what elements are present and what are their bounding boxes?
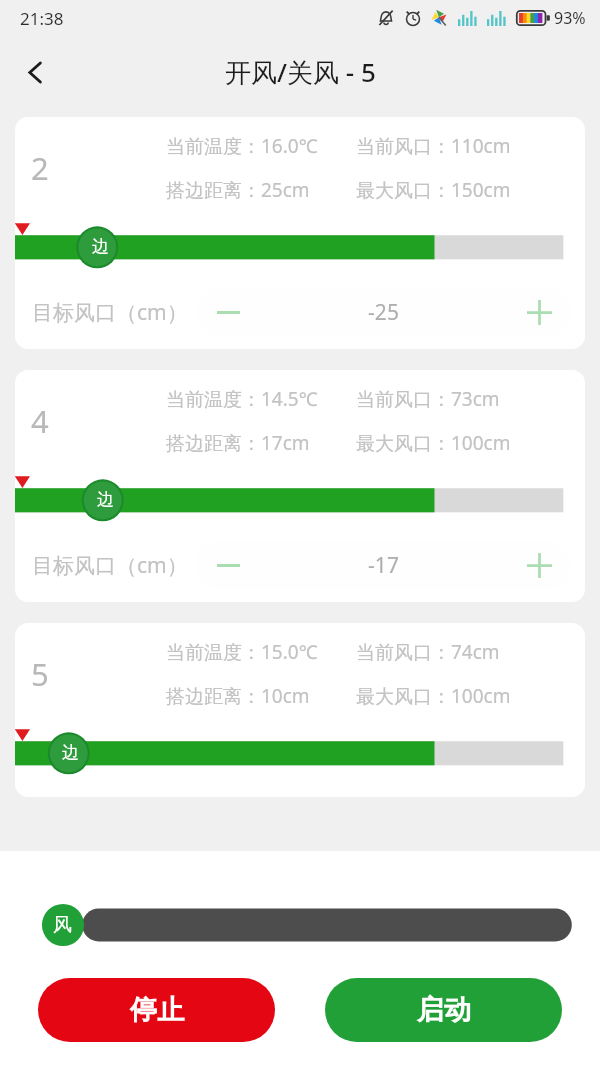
staticText: 5 <box>31 653 166 695</box>
staticText: -25 <box>260 298 507 327</box>
staticText: 搭边距离：25cm <box>166 177 356 203</box>
button[interactable]: Fan slider <box>0 899 600 951</box>
button[interactable]: Decrease <box>196 287 260 337</box>
staticText: 边 <box>97 489 114 510</box>
staticText: 搭边距离：10cm <box>166 683 356 709</box>
staticText: 目标风口（cm） <box>32 298 188 327</box>
button[interactable]: 4 <box>15 370 585 602</box>
button[interactable]: 2 <box>15 117 585 349</box>
staticText: 93% <box>554 7 586 29</box>
button[interactable]: Vent position slider <box>15 219 585 275</box>
staticText: 最大风口：100cm <box>356 430 511 456</box>
button[interactable]: 停止 <box>38 978 275 1042</box>
staticText: 边 <box>62 742 79 763</box>
staticText: 当前风口：74cm <box>356 639 500 665</box>
button[interactable]: 启动 <box>325 978 562 1042</box>
staticText: 2 <box>31 147 166 189</box>
button[interactable]: 5 <box>15 623 585 797</box>
button[interactable]: Increase <box>507 287 571 337</box>
staticText: 最大风口：150cm <box>356 177 511 203</box>
staticText: 边 <box>92 236 109 257</box>
staticText: 目标风口（cm） <box>32 551 188 580</box>
staticText: 当前温度：14.5℃ <box>166 386 356 412</box>
button[interactable]: Vent position slider <box>15 472 585 528</box>
staticText: 停止 <box>130 993 184 1027</box>
staticText: 风 <box>53 913 72 937</box>
staticText: 当前温度：16.0℃ <box>166 133 356 159</box>
staticText: 当前温度：15.0℃ <box>166 639 356 665</box>
staticText: 当前风口：110cm <box>356 133 511 159</box>
button[interactable]: Vent position slider <box>15 725 585 781</box>
staticText: 当前风口：73cm <box>356 386 500 412</box>
staticText: 4 <box>31 400 166 442</box>
staticText: 21:38 <box>20 7 64 30</box>
staticText: 最大风口：100cm <box>356 683 511 709</box>
staticText: 开风/关风 - 5 <box>225 54 376 90</box>
button[interactable]: Increase <box>507 540 571 590</box>
button[interactable]: Decrease <box>196 540 260 590</box>
staticText: -17 <box>260 551 507 580</box>
staticText: 启动 <box>417 993 471 1027</box>
staticText: 搭边距离：17cm <box>166 430 356 456</box>
button[interactable]: Back <box>9 46 61 98</box>
